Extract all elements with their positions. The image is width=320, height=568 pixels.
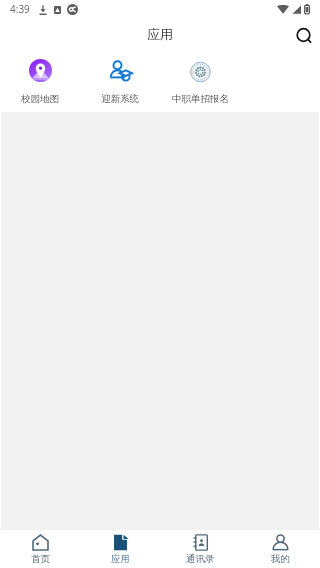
staticText: 通讯录 — [186, 553, 215, 565]
button[interactable]: Search — [289, 21, 320, 53]
staticText: 迎新系统 — [101, 93, 139, 105]
button[interactable]: 迎新系统 — [80, 56, 160, 112]
button[interactable]: 中职单招报名 — [160, 56, 240, 112]
staticText: 应用 — [147, 26, 173, 42]
button[interactable]: 我的 — [240, 530, 320, 568]
staticText: 首页 — [31, 553, 50, 565]
staticText: 应用 — [111, 553, 130, 565]
button[interactable]: 校园地图 — [0, 56, 80, 112]
button[interactable]: 首页 — [0, 530, 80, 568]
staticText: 校园地图 — [21, 93, 59, 105]
staticText: 我的 — [271, 553, 290, 565]
staticText: 中职单招报名 — [172, 93, 229, 105]
staticText: 4:39 — [10, 2, 30, 16]
button[interactable]: 应用 — [80, 530, 160, 568]
button[interactable]: 通讯录 — [160, 530, 240, 568]
